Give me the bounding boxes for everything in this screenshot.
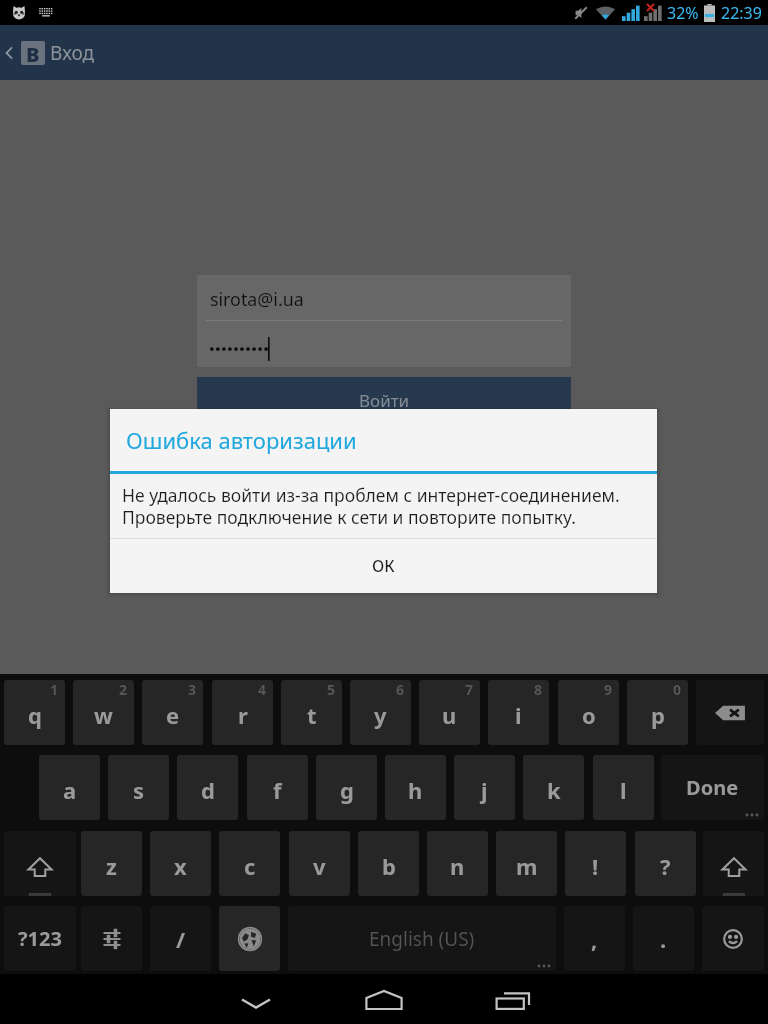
staticText: ? bbox=[660, 851, 671, 881]
button[interactable]: f bbox=[247, 755, 308, 820]
button[interactable]: Recent apps bbox=[472, 974, 552, 1024]
staticText: Done bbox=[686, 774, 739, 801]
staticText: z bbox=[106, 851, 117, 881]
button[interactable]: b bbox=[358, 831, 419, 896]
staticText: i bbox=[515, 700, 522, 730]
staticText: u bbox=[442, 700, 457, 730]
staticText: . bbox=[660, 924, 667, 954]
staticText: 5 bbox=[327, 680, 336, 699]
button[interactable]: VK logo bbox=[21, 41, 45, 65]
button[interactable]: Done bbox=[661, 755, 764, 820]
staticText: g bbox=[340, 775, 354, 805]
button[interactable]: h bbox=[385, 755, 446, 820]
staticText: English (US) bbox=[369, 926, 475, 952]
staticText: l bbox=[620, 775, 627, 805]
staticText: 9 bbox=[604, 680, 613, 699]
button[interactable]: , bbox=[564, 906, 625, 971]
staticText: r bbox=[238, 700, 248, 730]
staticText: x bbox=[174, 851, 187, 881]
button[interactable]: d bbox=[177, 755, 238, 820]
staticText: ОК bbox=[372, 555, 395, 577]
button[interactable]: English (US) bbox=[288, 906, 556, 971]
staticText: j bbox=[481, 775, 488, 805]
button[interactable]: Backspace bbox=[696, 680, 764, 745]
button[interactable]: Password field bbox=[197, 321, 571, 367]
staticText: n bbox=[450, 851, 465, 881]
staticText: q bbox=[28, 700, 42, 730]
staticText: v bbox=[313, 851, 326, 881]
staticText: o bbox=[582, 700, 596, 730]
button[interactable]: t bbox=[281, 680, 342, 745]
button[interactable]: ! bbox=[565, 831, 626, 896]
button[interactable]: Settings bbox=[81, 906, 142, 971]
button[interactable]: x bbox=[150, 831, 211, 896]
button[interactable]: u bbox=[419, 680, 480, 745]
staticText: 6 bbox=[396, 680, 405, 699]
staticText: y bbox=[374, 700, 387, 730]
button[interactable]: a bbox=[39, 755, 100, 820]
staticText: f bbox=[273, 775, 282, 805]
button[interactable]: ? bbox=[635, 831, 696, 896]
staticText: 32% bbox=[667, 2, 699, 24]
button[interactable]: r bbox=[212, 680, 273, 745]
staticText: Проверьте подключение к сети и повторите… bbox=[122, 505, 576, 529]
staticText: t bbox=[307, 700, 317, 730]
button[interactable]: Back bbox=[0, 25, 18, 80]
staticText: ?123 bbox=[18, 925, 62, 952]
staticText: 22:39 bbox=[721, 2, 762, 24]
staticText: Ошибка авторизации bbox=[126, 425, 357, 455]
staticText: b bbox=[382, 851, 396, 881]
button[interactable]: z bbox=[81, 831, 142, 896]
button[interactable]: Emoji bbox=[702, 906, 764, 971]
staticText: w bbox=[94, 700, 113, 730]
button[interactable]: n bbox=[427, 831, 488, 896]
staticText: 2 bbox=[119, 680, 128, 699]
staticText: d bbox=[201, 775, 215, 805]
button[interactable]: ?123 bbox=[4, 906, 76, 971]
button[interactable]: Hide keyboard bbox=[216, 974, 296, 1024]
button[interactable]: Home bbox=[344, 974, 424, 1024]
button[interactable]: v bbox=[289, 831, 350, 896]
staticText: , bbox=[591, 924, 598, 954]
staticText: a bbox=[63, 775, 77, 805]
button[interactable]: / bbox=[150, 906, 211, 971]
button[interactable]: y bbox=[350, 680, 411, 745]
button[interactable]: . bbox=[633, 906, 694, 971]
button[interactable]: k bbox=[523, 755, 584, 820]
staticText: 8 bbox=[534, 680, 543, 699]
button[interactable]: i bbox=[488, 680, 549, 745]
button[interactable]: m bbox=[496, 831, 557, 896]
staticText: h bbox=[408, 775, 423, 805]
staticText: k bbox=[547, 775, 561, 805]
button[interactable]: e bbox=[142, 680, 203, 745]
staticText: 4 bbox=[258, 680, 267, 699]
staticText: Вход bbox=[50, 40, 95, 66]
button[interactable]: o bbox=[558, 680, 619, 745]
button[interactable]: q bbox=[4, 680, 65, 745]
button[interactable]: p bbox=[627, 680, 688, 745]
button[interactable]: Войти bbox=[197, 377, 571, 423]
staticText: B bbox=[26, 41, 40, 65]
staticText: s bbox=[133, 775, 145, 805]
staticText: 7 bbox=[465, 680, 474, 699]
staticText: / bbox=[176, 924, 186, 954]
button[interactable]: Shift bbox=[703, 831, 764, 896]
staticText: 1 bbox=[50, 680, 59, 699]
staticText: 3 bbox=[188, 680, 197, 699]
button[interactable]: l bbox=[593, 755, 654, 820]
button[interactable]: g bbox=[316, 755, 377, 820]
button[interactable]: j bbox=[454, 755, 515, 820]
button[interactable]: w bbox=[73, 680, 134, 745]
button[interactable]: s bbox=[108, 755, 169, 820]
button[interactable]: c bbox=[219, 831, 280, 896]
staticText: m bbox=[516, 851, 538, 881]
staticText: sirota@i.ua bbox=[210, 287, 304, 311]
staticText: p bbox=[651, 700, 665, 730]
button[interactable]: Shift bbox=[4, 831, 76, 896]
staticText: 0 bbox=[673, 680, 682, 699]
button[interactable]: ОК bbox=[110, 539, 657, 593]
button[interactable]: Language bbox=[219, 906, 280, 971]
button[interactable]: Email field bbox=[197, 275, 571, 321]
staticText: e bbox=[166, 700, 180, 730]
staticText: Не удалось войти из-за проблем с интерне… bbox=[122, 483, 620, 507]
